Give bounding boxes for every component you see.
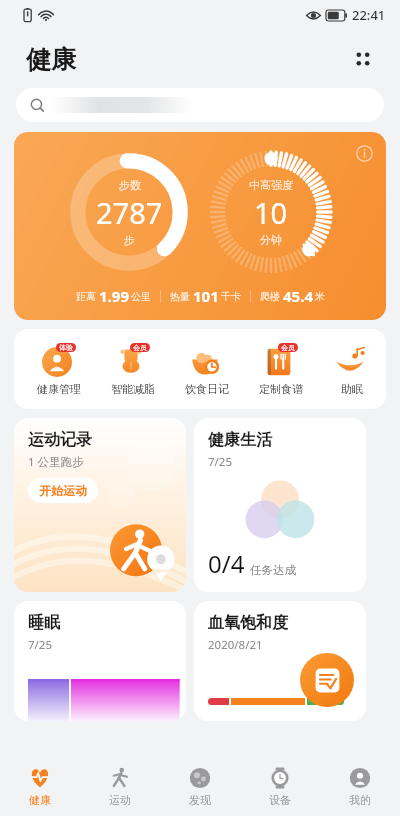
button[interactable]: 助眠 [318,339,386,400]
button[interactable]: 饮食日记 [170,339,244,400]
staticText: 千卡 [221,290,241,303]
button[interactable]: Info [351,140,377,166]
staticText: 7/25 [208,454,233,470]
staticText: 热量 [170,290,190,303]
staticText: 智能减脂 [111,382,155,396]
staticText: 爬楼 [260,290,280,303]
staticText: 健康 [26,44,76,75]
button[interactable]: 体验 [22,339,96,400]
staticText: 定制食谱 [259,382,303,396]
staticText: 2020/8/21 [208,637,263,653]
staticText: 分钟 [260,233,282,247]
staticText: 发现 [189,793,211,807]
staticText: 22:41 [352,6,386,24]
staticText: 7/25 [28,637,53,653]
staticText: 步数 [119,178,141,192]
staticText: 米 [315,290,325,303]
staticText: 1.99 [99,286,129,306]
staticText: 饮食日记 [185,382,229,396]
staticText: 中高强度 [249,178,293,192]
staticText: 设备 [269,793,291,807]
staticText: 距离 [76,290,96,303]
button[interactable]: Info [14,132,386,320]
staticText: 公里 [131,290,151,303]
staticText: 睡眠 [28,613,60,633]
staticText: 运动 [109,793,131,807]
staticText: 开始运动 [39,483,87,498]
button[interactable]: 健康 [0,761,80,813]
staticText: 步 [124,233,135,247]
button[interactable] [16,88,384,122]
staticText: 运动记录 [28,430,92,450]
staticText: 45.4 [283,286,313,306]
staticText: 健康生活 [208,430,272,450]
button[interactable]: 设备 [240,761,320,813]
button[interactable]: More options [346,42,380,76]
button[interactable]: 会员 [244,339,318,400]
button[interactable]: 我的 [320,761,400,813]
staticText: 会员 [133,343,147,352]
staticText: 我的 [349,793,371,807]
button[interactable]: Record measurement [300,653,354,707]
staticText: 任务达成 [250,563,296,577]
staticText: 0/4 [208,547,245,580]
button[interactable]: 睡眠 [14,601,186,721]
staticText: 1 公里跑步 [28,454,84,470]
button[interactable]: 健康生活 [194,418,366,592]
staticText: 健康 [29,793,51,807]
button[interactable]: 会员 [96,339,170,400]
staticText: 体验 [59,343,73,352]
staticText: 助眠 [341,382,363,396]
staticText: 健康管理 [37,382,81,396]
staticText: 101 [193,286,219,306]
staticText: 2787 [96,193,163,232]
button[interactable]: 运动 [80,761,160,813]
staticText: 10 [254,193,288,232]
button[interactable]: 运动记录 [14,418,186,592]
staticText: 血氧饱和度 [208,613,288,633]
staticText: 会员 [281,343,295,352]
button[interactable]: 发现 [160,761,240,813]
button[interactable]: 血氧饱和度 [194,601,366,721]
button[interactable]: 开始运动 [28,478,98,503]
